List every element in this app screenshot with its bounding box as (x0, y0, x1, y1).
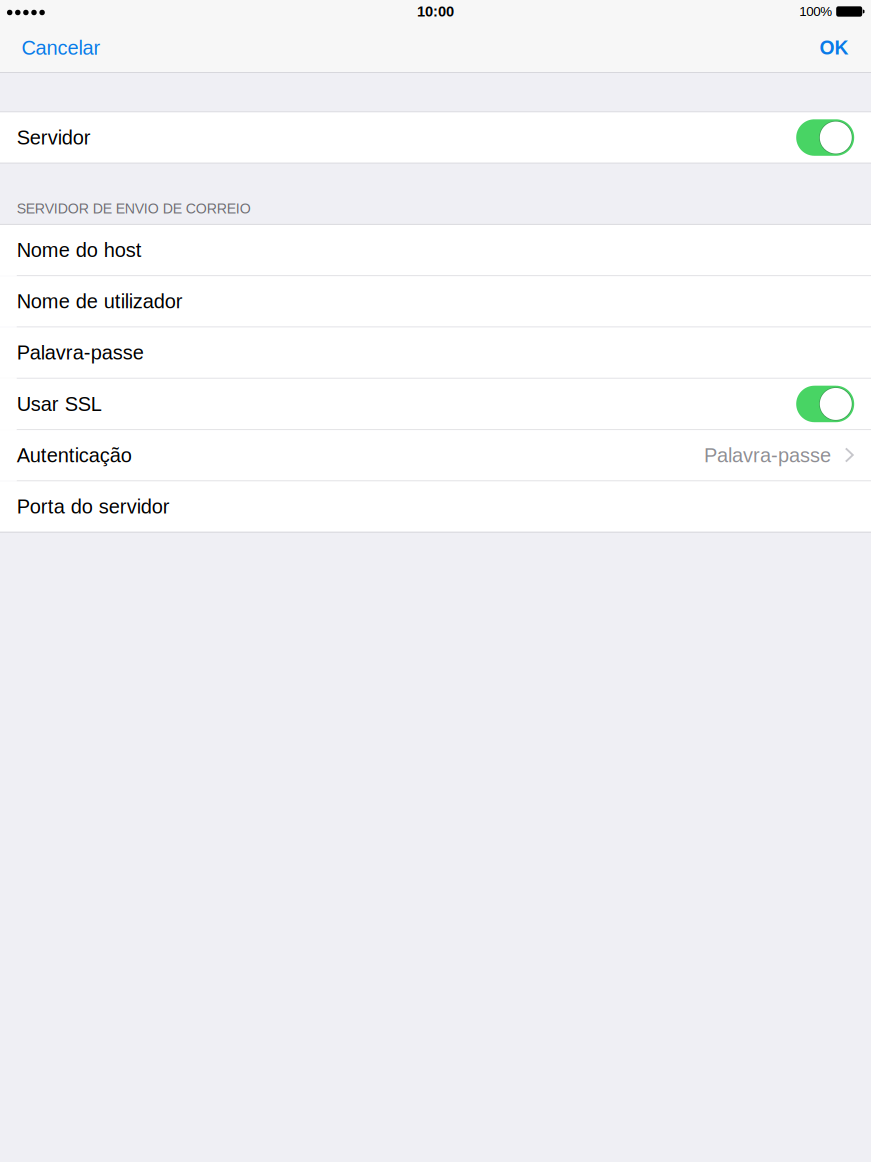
button[interactable]: Servidor (796, 119, 854, 156)
button[interactable]: Usar SSL (796, 386, 854, 422)
button[interactable]: OK (751, 28, 871, 72)
button[interactable]: Porta do servidor (0, 481, 871, 532)
staticText: SERVIDOR DE ENVIO DE CORREIO (17, 201, 251, 216)
staticText: Usar SSL (17, 393, 102, 415)
staticText: Cancelar (22, 37, 101, 59)
button[interactable]: Palavra-passe (0, 327, 871, 378)
staticText: Nome de utilizador (17, 290, 183, 312)
staticText: Porta do servidor (17, 495, 170, 518)
staticText: Servidor (17, 126, 91, 149)
staticText: OK (819, 37, 848, 59)
staticText: 100% (799, 4, 832, 19)
staticText: Palavra-passe (704, 444, 831, 466)
staticText: Autenticação (17, 444, 132, 466)
button[interactable]: Nome do host (0, 225, 871, 275)
staticText: Nome do host (17, 239, 142, 261)
button[interactable]: Nome de utilizador (0, 276, 871, 326)
staticText: 10:00 (417, 3, 454, 20)
button[interactable]: Cancelar (0, 28, 140, 72)
staticText: Palavra-passe (17, 341, 144, 364)
button[interactable]: Autenticação (0, 430, 871, 480)
